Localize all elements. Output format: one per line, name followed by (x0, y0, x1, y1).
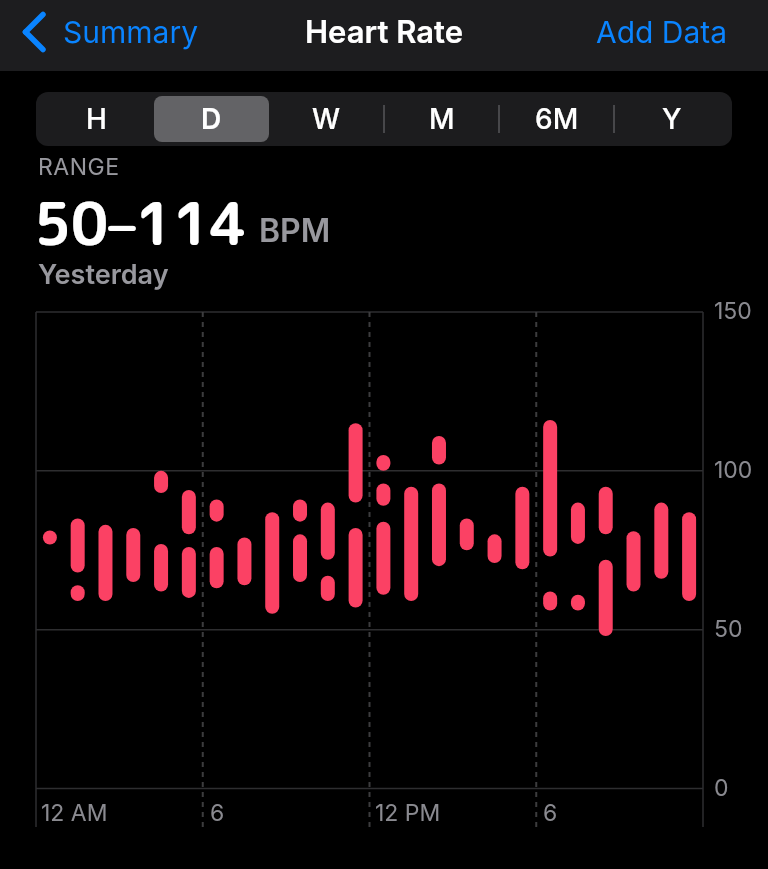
staticText: 150 (714, 297, 752, 325)
staticText: H (86, 102, 107, 136)
staticText: 12 PM (375, 799, 441, 827)
button[interactable]: Add Data (596, 14, 728, 50)
staticText: W (312, 102, 341, 136)
staticText: Summary (63, 14, 199, 50)
staticText: 6M (535, 102, 579, 136)
staticText: Y (662, 102, 682, 136)
button[interactable]: H (39, 96, 154, 142)
button[interactable]: Summary (22, 12, 199, 52)
staticText: M (429, 102, 455, 136)
button[interactable]: 6M (499, 96, 614, 142)
staticText: RANGE (38, 153, 120, 181)
button[interactable]: Y (614, 96, 729, 142)
staticText: Yesterday (38, 258, 169, 291)
button[interactable]: W (269, 96, 384, 142)
staticText: D (201, 102, 222, 136)
staticText: 6 (210, 799, 225, 827)
staticText: 0 (714, 774, 729, 802)
button[interactable]: D (154, 96, 269, 142)
staticText: BPM (259, 211, 331, 250)
staticText: 50 (714, 615, 743, 643)
staticText: Add Data (596, 14, 728, 50)
staticText: Heart Rate (305, 13, 464, 51)
button[interactable]: M (384, 96, 499, 142)
staticText: 50–114 (34, 183, 247, 264)
staticText: 12 AM (41, 799, 108, 827)
staticText: 100 (714, 456, 753, 484)
staticText: 6 (543, 799, 558, 827)
